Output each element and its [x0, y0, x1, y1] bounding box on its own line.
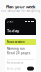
staticText: Morning run [7, 47, 25, 50]
staticText: 9:41 [7, 20, 14, 23]
staticText: Reminders [7, 61, 23, 65]
staticText: Read 20 pages [7, 51, 30, 55]
staticText: Focus session [7, 40, 25, 44]
staticText: Auto plan [7, 67, 21, 70]
staticText: Plan your week [6, 4, 35, 9]
staticText: one calm place for everything [0, 9, 40, 13]
staticText: Today [7, 28, 19, 33]
